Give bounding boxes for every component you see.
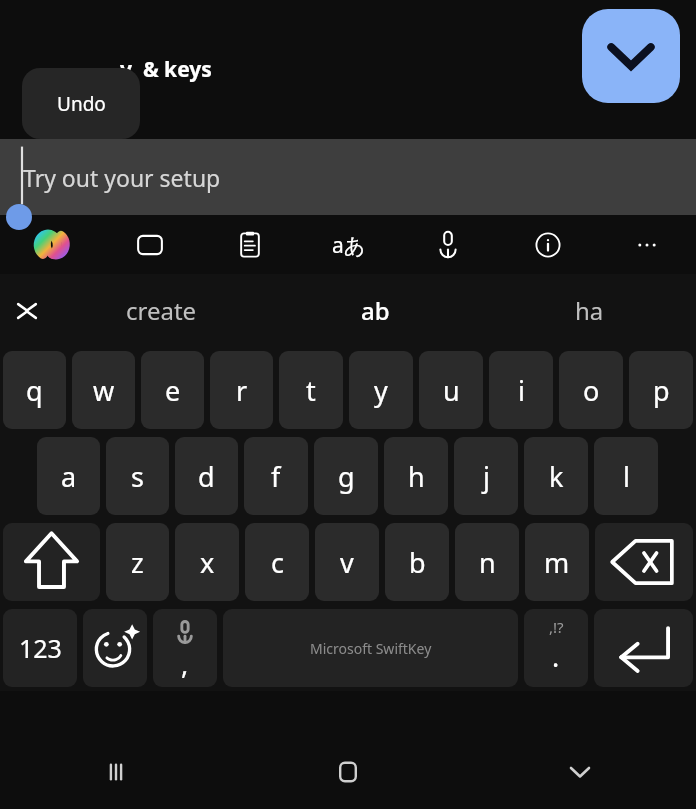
button[interactable]: 123 — [3, 609, 77, 687]
staticText: ,!? — [549, 617, 564, 637]
button[interactable]: q — [3, 351, 66, 429]
button[interactable]: y — [349, 351, 413, 429]
staticText: y — [374, 372, 388, 409]
staticText: y & keys — [120, 55, 212, 84]
button[interactable]: c — [245, 523, 309, 601]
button[interactable]: x — [175, 523, 239, 601]
button[interactable]: n — [455, 523, 519, 601]
staticText: Try out your setup — [23, 162, 221, 193]
staticText: , — [181, 645, 189, 682]
button[interactable]: Comma, voice input — [153, 609, 217, 687]
button[interactable]: Undo — [22, 68, 140, 139]
staticText: Undo — [57, 91, 106, 117]
staticText: . — [552, 638, 560, 675]
staticText: s — [131, 458, 144, 495]
button[interactable]: v — [315, 523, 379, 601]
staticText: r — [236, 372, 248, 409]
staticText: k — [549, 458, 564, 495]
button[interactable]: Enter — [594, 609, 693, 687]
button[interactable]: Recents — [0, 735, 232, 809]
staticText: n — [479, 544, 496, 581]
button[interactable]: create — [54, 274, 268, 347]
staticText: i — [518, 372, 525, 409]
button[interactable]: h — [384, 437, 448, 515]
staticText: o — [583, 372, 600, 409]
staticText: Microsoft SwiftKey — [310, 639, 432, 658]
button[interactable]: Emoji — [83, 609, 147, 687]
button[interactable]: k — [524, 437, 588, 515]
staticText: x — [200, 544, 215, 581]
button[interactable]: More options — [624, 222, 670, 268]
staticText: e — [165, 372, 181, 409]
button[interactable]: Period and punctuation — [524, 609, 588, 687]
staticText: a — [61, 458, 77, 495]
staticText: b — [409, 544, 426, 581]
button[interactable]: Collapse — [582, 9, 680, 103]
button[interactable]: g — [314, 437, 378, 515]
staticText: c — [271, 544, 284, 581]
staticText: f — [271, 458, 281, 495]
button[interactable]: d — [175, 437, 238, 515]
staticText: aあ — [332, 231, 366, 260]
button[interactable]: s — [106, 437, 169, 515]
button[interactable]: e — [141, 351, 204, 429]
staticText: w — [93, 372, 115, 409]
button[interactable]: Home — [232, 735, 464, 809]
button[interactable]: ab — [268, 274, 482, 347]
button[interactable]: b — [385, 523, 449, 601]
button[interactable]: Shift — [3, 523, 100, 601]
staticText: p — [653, 372, 670, 409]
button[interactable]: Expand suggestions — [0, 274, 54, 347]
button[interactable]: z — [106, 523, 169, 601]
staticText: l — [623, 458, 630, 495]
staticText: g — [338, 458, 355, 495]
staticText: z — [131, 544, 144, 581]
button[interactable]: r — [210, 351, 273, 429]
button[interactable]: t — [279, 351, 343, 429]
staticText: d — [198, 458, 215, 495]
button[interactable]: Language — [326, 222, 372, 268]
staticText: ha — [575, 294, 604, 327]
button[interactable]: Info — [525, 222, 571, 268]
button[interactable]: p — [629, 351, 693, 429]
button[interactable]: Backspace — [595, 523, 693, 601]
button[interactable]: GIF — [127, 222, 173, 268]
button[interactable]: Clipboard — [227, 222, 273, 268]
button[interactable]: m — [525, 523, 589, 601]
staticText: ab — [361, 294, 390, 327]
staticText: v — [340, 544, 354, 581]
button[interactable]: a — [37, 437, 100, 515]
button[interactable]: Microsoft SwiftKey — [223, 609, 518, 687]
staticText: j — [483, 458, 490, 495]
button[interactable]: l — [594, 437, 658, 515]
button[interactable]: ha — [482, 274, 696, 347]
button[interactable]: Voice input — [425, 222, 471, 268]
button[interactable]: o — [559, 351, 623, 429]
button[interactable]: f — [244, 437, 308, 515]
button[interactable]: u — [419, 351, 483, 429]
staticText: t — [306, 372, 316, 409]
button[interactable]: w — [72, 351, 135, 429]
staticText: q — [26, 372, 43, 409]
button[interactable]: i — [489, 351, 553, 429]
staticText: 123 — [19, 631, 62, 665]
staticText: h — [408, 458, 425, 495]
button[interactable]: j — [454, 437, 518, 515]
staticText: create — [126, 294, 197, 327]
staticText: m — [544, 544, 570, 581]
staticText: u — [443, 372, 460, 409]
button[interactable]: Hide keyboard — [464, 735, 696, 809]
button[interactable]: Copilot — [28, 222, 74, 268]
